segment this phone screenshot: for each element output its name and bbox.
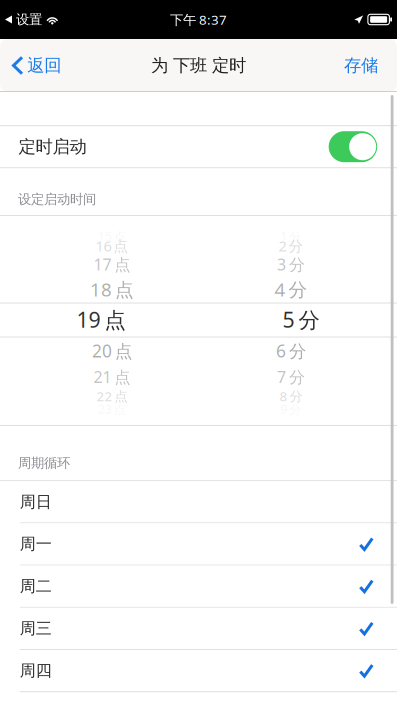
staticText: 下午 8:37 [170, 11, 227, 28]
staticText: 7 分 [277, 366, 305, 387]
staticText: 9 分 [280, 401, 301, 417]
button[interactable]: 周二 [0, 566, 397, 608]
staticText: 周一 [20, 534, 52, 554]
button[interactable]: 周日 [0, 481, 397, 523]
staticText: 3 分 [277, 254, 305, 275]
staticText: 15 点 [98, 228, 126, 244]
staticText: 返回 [27, 55, 61, 76]
staticText: 6 分 [276, 339, 306, 362]
staticText: 4 分 [274, 277, 307, 302]
staticText: 下班 [173, 55, 207, 76]
staticText: 16 点 [95, 236, 128, 255]
button[interactable]: 存储 [330, 39, 397, 92]
staticText: 5 分 [282, 305, 319, 334]
staticText: 周日 [20, 492, 52, 512]
button[interactable]: 周四 [0, 650, 397, 692]
staticText: 设置 [16, 11, 42, 28]
staticText: 周期循环 [18, 455, 70, 471]
staticText: 定时 [212, 55, 246, 76]
button[interactable]: 周一 [0, 523, 397, 566]
staticText: 20 点 [92, 339, 132, 362]
staticText: 周二 [20, 576, 52, 596]
staticText: 22 点 [96, 387, 127, 405]
staticText: 为 [151, 55, 168, 76]
staticText: 周三 [20, 619, 52, 638]
staticText: 1 分 [280, 228, 301, 244]
staticText: 18 点 [90, 277, 134, 302]
button[interactable]: 周三 [0, 608, 397, 650]
staticText: 存储 [344, 55, 378, 76]
staticText: 21 点 [93, 366, 130, 387]
staticText: 设定启动时间 [18, 191, 96, 208]
staticText: 23 点 [98, 401, 126, 417]
staticText: 17 点 [93, 254, 130, 275]
staticText: 8 分 [279, 387, 302, 405]
staticText: 19 点 [76, 305, 125, 334]
staticText: 周四 [20, 661, 52, 680]
staticText: 2 分 [278, 236, 303, 255]
staticText: 定时启动 [18, 136, 86, 157]
button[interactable]: 返回 [0, 39, 71, 92]
